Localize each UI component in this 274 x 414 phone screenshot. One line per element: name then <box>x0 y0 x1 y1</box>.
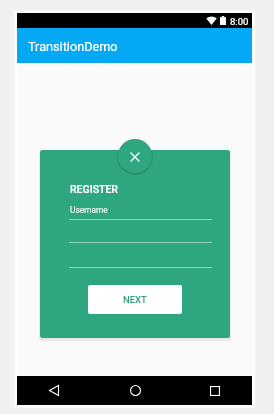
button[interactable]: NEXT <box>88 285 182 314</box>
staticText: 8:00 <box>230 16 249 27</box>
button[interactable]: Back <box>35 376 73 405</box>
staticText: REGISTER <box>70 183 118 195</box>
button[interactable]: TransitionDemo <box>17 28 252 63</box>
staticText: NEXT <box>123 294 147 305</box>
staticText: TransitionDemo <box>28 39 118 54</box>
button[interactable]: Close <box>118 139 152 173</box>
button[interactable]: Home <box>116 376 154 405</box>
button[interactable]: Recents <box>196 376 234 405</box>
staticText: Username <box>70 205 108 215</box>
